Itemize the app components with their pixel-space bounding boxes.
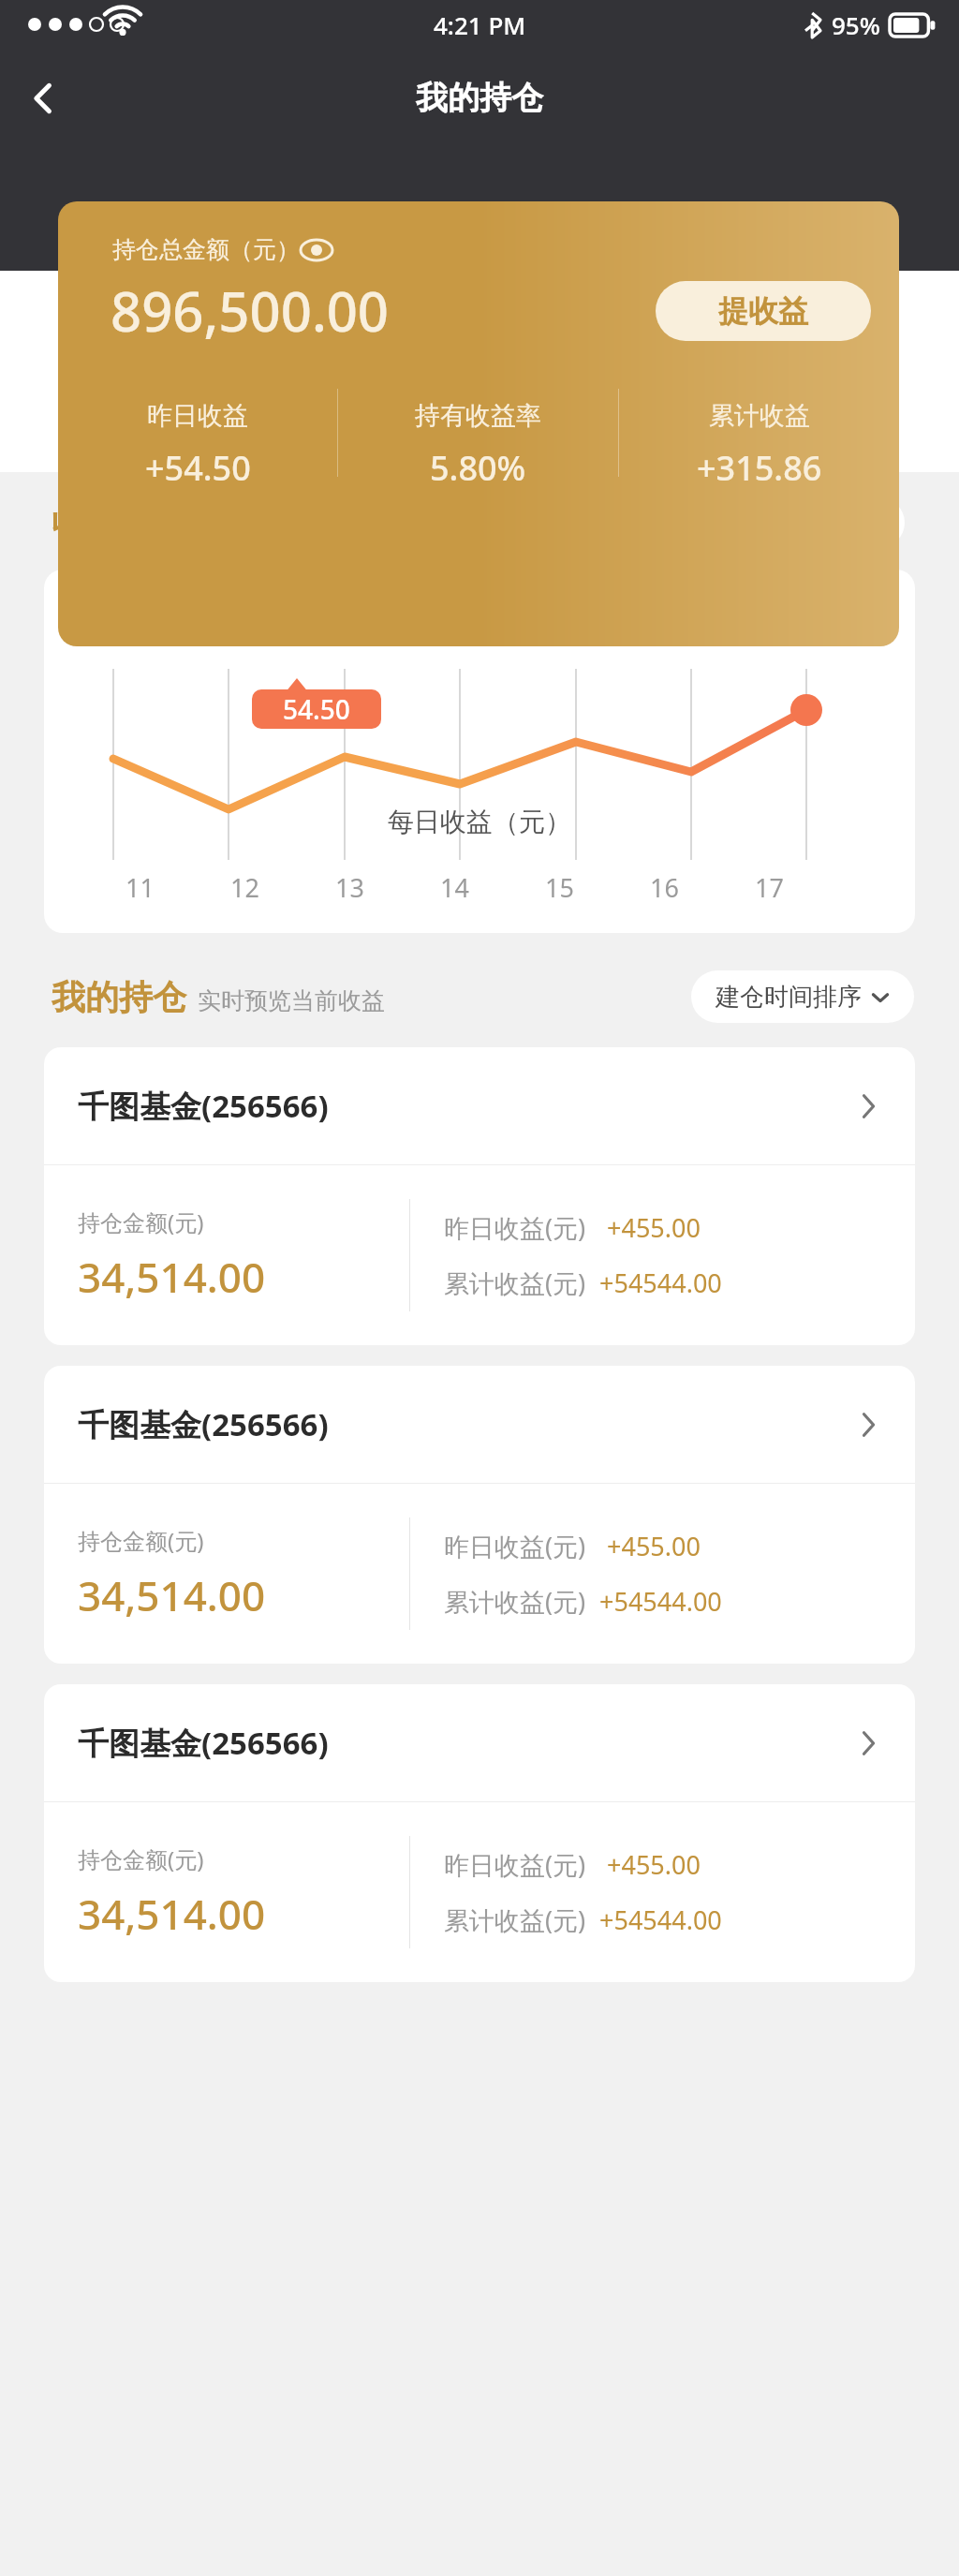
staticText: +455.00 xyxy=(607,1847,701,1882)
staticText: 昨日收益(元) xyxy=(444,1847,586,1882)
button[interactable]: Toggle visibility xyxy=(305,239,328,261)
staticText: 持仓金额(元) xyxy=(78,1843,204,1874)
staticText: 昨日收益(元) xyxy=(444,1210,586,1245)
staticText: 95% xyxy=(832,8,880,41)
staticText: 昨日收益 xyxy=(147,400,248,432)
staticText: 14 xyxy=(440,870,469,905)
staticText: 896,500.00 xyxy=(111,274,390,348)
button[interactable]: 建仓时间排序 xyxy=(691,970,914,1023)
staticText: 昨日收益(元) xyxy=(444,1529,586,1563)
button[interactable]: 提收益 xyxy=(656,281,871,341)
staticText: 持仓金额(元) xyxy=(78,1525,204,1556)
staticText: 千图基金(256566) xyxy=(78,1722,329,1764)
staticText: +54544.00 xyxy=(599,1902,722,1937)
staticText: 12 xyxy=(230,870,259,905)
staticText: 累计收益(元) xyxy=(444,1902,586,1937)
staticText: 16 xyxy=(650,870,679,905)
staticText: 34,514.00 xyxy=(78,1567,266,1623)
staticText: 17 xyxy=(755,870,784,905)
staticText: 千图基金(256566) xyxy=(78,1403,329,1445)
staticText: 4:21 PM xyxy=(434,8,526,41)
staticText: 建仓时间排序 xyxy=(716,982,862,1013)
staticText: 每日收益（元） xyxy=(388,806,571,838)
button[interactable]: 千图基金(256566) xyxy=(44,1047,915,1345)
staticText: 15 xyxy=(545,870,574,905)
button[interactable]: Back xyxy=(13,68,73,128)
button[interactable]: 千图基金(256566) xyxy=(44,1366,915,1664)
staticText: 实时预览当前收益 xyxy=(198,986,385,1015)
staticText: 提收益 xyxy=(718,292,808,330)
staticText: 累计收益(元) xyxy=(444,1266,586,1300)
button[interactable]: 每日收益（周） xyxy=(659,497,905,548)
staticText: +54.50 xyxy=(145,445,251,491)
staticText: 持仓金额(元) xyxy=(78,1207,204,1237)
staticText: +455.00 xyxy=(607,1529,701,1563)
staticText: +315.86 xyxy=(697,445,822,491)
staticText: 11 xyxy=(125,870,155,905)
staticText: 收益预览 xyxy=(52,502,186,544)
staticText: 累计收益(元) xyxy=(444,1584,586,1619)
staticText: 每日收益（周） xyxy=(684,508,854,539)
staticText: 持仓总金额（元） xyxy=(112,235,300,264)
staticText: 持有收益率 xyxy=(415,400,541,432)
staticText: +455.00 xyxy=(607,1210,701,1245)
staticText: 您有1000.00元购买在途，购买成功后会显示在持仓中 xyxy=(191,410,769,444)
staticText: 34,514.00 xyxy=(78,1886,266,1942)
staticText: 34,514.00 xyxy=(78,1249,266,1305)
staticText: 累计收益 xyxy=(709,400,810,432)
staticText: 5.80% xyxy=(430,445,526,491)
button[interactable]: 千图基金(256566) xyxy=(44,1684,915,1982)
staticText: 54.50 xyxy=(283,691,350,727)
staticText: +54544.00 xyxy=(599,1266,722,1300)
button[interactable]: 持仓总金额（元） xyxy=(58,201,899,646)
staticText: 我的持仓 xyxy=(416,78,543,118)
staticText: 13 xyxy=(335,870,364,905)
staticText: 我的持仓 xyxy=(52,976,186,1018)
staticText: 千图基金(256566) xyxy=(78,1085,329,1127)
staticText: +54544.00 xyxy=(599,1584,722,1619)
